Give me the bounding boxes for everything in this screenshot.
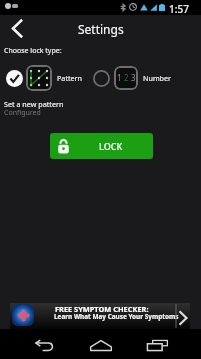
staticText: Pattern bbox=[57, 73, 83, 83]
button[interactable]: Back bbox=[2, 15, 32, 42]
staticText: 1:57 bbox=[169, 2, 189, 16]
staticText: 2 bbox=[124, 72, 129, 83]
button[interactable]: Home bbox=[83, 330, 119, 359]
staticText: 1 bbox=[117, 72, 122, 83]
button[interactable]: FREE SYMPTOM CHECKER: bbox=[10, 303, 190, 329]
button[interactable]: Pattern bbox=[6, 64, 83, 92]
button[interactable]: LOCK bbox=[50, 133, 153, 159]
staticText: LOCK bbox=[99, 140, 123, 152]
staticText: Learn What May Cause Your Symptoms bbox=[54, 312, 179, 321]
staticText: Configured bbox=[4, 108, 41, 118]
staticText: FREE SYMPTOM CHECKER: bbox=[55, 304, 149, 314]
button[interactable]: Recent apps bbox=[139, 330, 175, 359]
staticText: 3 bbox=[131, 72, 136, 83]
staticText: Choose lock type: bbox=[4, 46, 62, 56]
button[interactable]: Set a new pattern bbox=[0, 99, 201, 121]
button[interactable]: 1 bbox=[93, 64, 172, 92]
staticText: Settings bbox=[78, 21, 124, 37]
button[interactable]: Back bbox=[26, 330, 62, 359]
staticText: Number bbox=[143, 73, 172, 83]
staticText: Set a new pattern bbox=[4, 99, 64, 109]
